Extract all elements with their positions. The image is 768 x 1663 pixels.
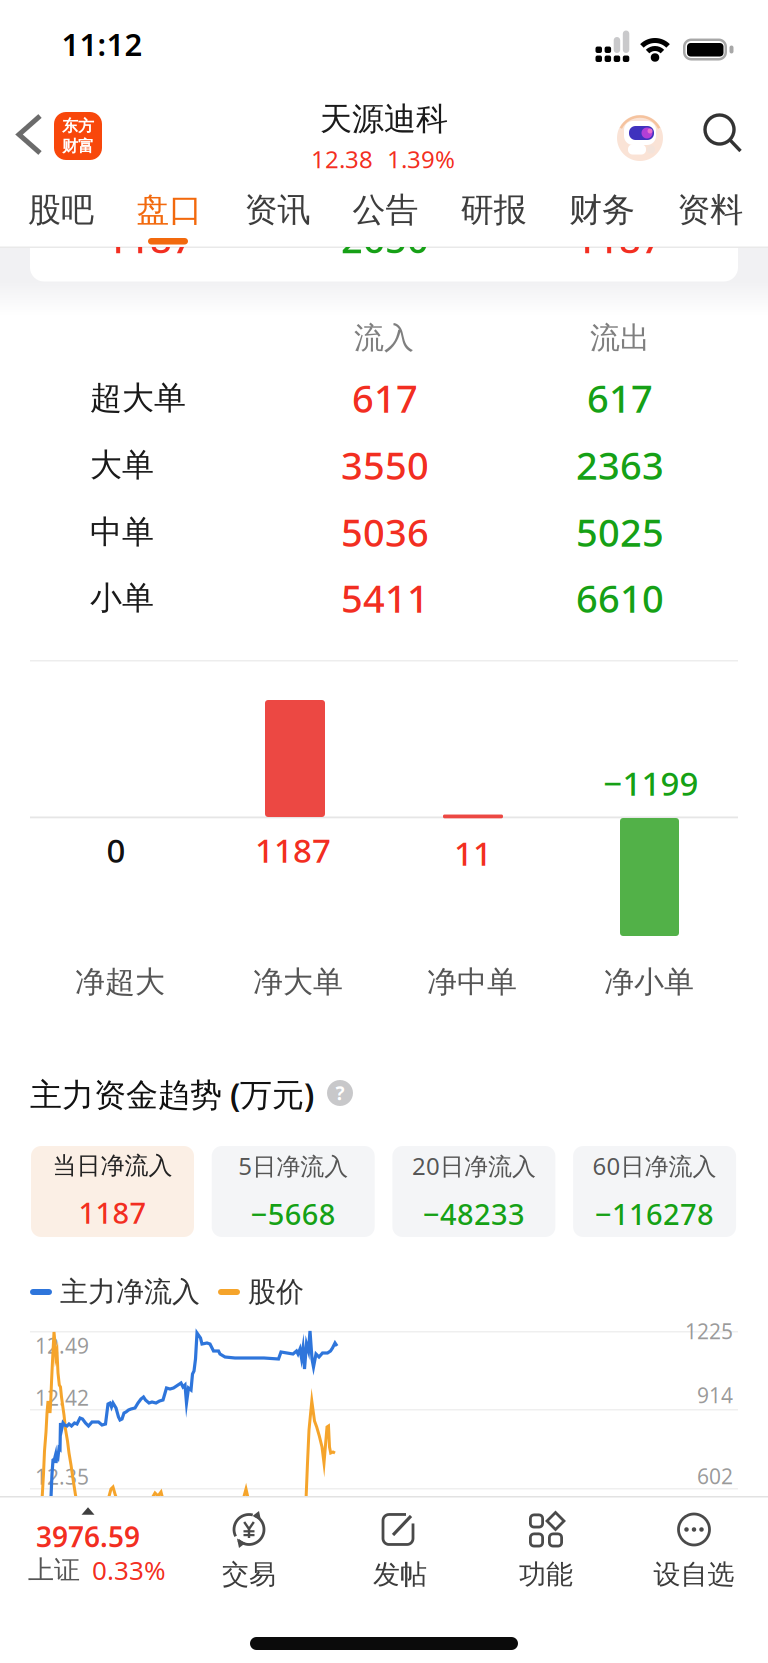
staticText: 主力资金趋势 (万元) <box>30 1072 314 1116</box>
staticText: 12.49 <box>35 1331 89 1360</box>
staticText: 研报 <box>461 189 527 231</box>
button[interactable]: 东方财富 <box>54 112 102 160</box>
staticText: 617 <box>587 372 653 424</box>
staticText: 资料 <box>677 189 743 231</box>
staticText: 6610 <box>576 572 664 624</box>
staticText: 5日净流入 <box>238 1149 348 1182</box>
button[interactable]: 功能 <box>478 1506 613 1596</box>
staticText: 上证 <box>28 1554 80 1586</box>
button[interactable]: 财务 <box>550 181 654 239</box>
staticText: 5025 <box>576 506 664 558</box>
staticText: 交易 <box>222 1557 276 1591</box>
staticText: 净中单 <box>427 963 517 1001</box>
staticText: 0 <box>106 827 125 872</box>
staticText: 11:12 <box>61 23 142 65</box>
button[interactable]: 帮助 <box>327 1080 353 1106</box>
staticText: 财富 <box>62 136 94 156</box>
staticText: 小单 <box>90 578 154 618</box>
staticText: 2650 <box>341 213 429 264</box>
staticText: 中单 <box>90 512 154 552</box>
staticText: 3976.59 <box>36 1517 140 1555</box>
staticText: 3550 <box>341 439 429 491</box>
staticText: 1225 <box>685 1317 733 1345</box>
button[interactable]: 5日净流入 <box>212 1146 375 1237</box>
staticText: 东方 <box>62 116 94 136</box>
staticText: −1199 <box>603 760 698 805</box>
staticText: 超大单 <box>90 378 186 418</box>
button[interactable]: 交易 <box>181 1506 316 1596</box>
staticText: 1187 <box>78 1193 146 1232</box>
staticText: 1187 <box>255 827 331 872</box>
staticText: 12.38 <box>311 143 373 175</box>
staticText: 天源迪科 <box>320 99 448 139</box>
button[interactable]: 资讯 <box>225 181 329 239</box>
staticText: 5036 <box>341 506 429 558</box>
staticText: 20日净流入 <box>412 1149 536 1182</box>
button[interactable]: 公告 <box>334 181 438 239</box>
staticText: 发帖 <box>373 1557 427 1591</box>
staticText: 公告 <box>353 189 419 231</box>
staticText: 11 <box>454 830 492 875</box>
staticText: 1187 <box>106 213 194 264</box>
staticText: −48233 <box>423 1194 525 1234</box>
staticText: 主力净流入 <box>60 1274 200 1310</box>
staticText: 大单 <box>90 445 154 485</box>
staticText: 60日净流入 <box>593 1149 717 1182</box>
staticText: 净大单 <box>253 963 343 1001</box>
staticText: −116278 <box>595 1194 714 1234</box>
button[interactable]: 盘口 <box>117 181 221 239</box>
button[interactable]: 3976.59 <box>0 1494 190 1590</box>
staticText: 12.35 <box>35 1462 89 1491</box>
staticText: 12.42 <box>35 1383 89 1412</box>
staticText: 2363 <box>576 439 664 491</box>
staticText: 股价 <box>248 1274 304 1310</box>
staticText: 1187 <box>575 213 663 264</box>
staticText: 5411 <box>341 572 429 624</box>
staticText: 1.39% <box>387 143 455 175</box>
button[interactable]: 资料 <box>658 181 762 239</box>
staticText: −5668 <box>251 1194 336 1234</box>
button[interactable]: 设自选 <box>626 1506 761 1596</box>
staticText: 602 <box>697 1462 733 1490</box>
staticText: ? <box>335 1080 344 1106</box>
button[interactable]: 发帖 <box>332 1506 467 1596</box>
staticText: 股吧 <box>28 189 94 231</box>
staticText: 当日净流入 <box>52 1151 172 1181</box>
staticText: 财务 <box>569 189 635 231</box>
staticText: 617 <box>352 372 418 424</box>
staticText: 净小单 <box>604 963 694 1001</box>
staticText: 资讯 <box>244 189 310 231</box>
button[interactable]: 60日净流入 <box>573 1146 736 1237</box>
button[interactable]: Search <box>703 114 745 154</box>
button[interactable]: Back <box>14 113 44 157</box>
button[interactable]: 当日净流入 <box>31 1146 194 1237</box>
staticText: 功能 <box>519 1557 573 1591</box>
staticText: 净超大 <box>75 963 165 1001</box>
staticText: 盘口 <box>136 189 202 231</box>
button[interactable]: AI 助手 <box>617 115 663 161</box>
button[interactable]: 20日净流入 <box>392 1146 555 1237</box>
staticText: 流入 <box>354 319 414 357</box>
staticText: 设自选 <box>653 1557 734 1591</box>
button[interactable]: 股吧 <box>9 181 113 239</box>
staticText: 流出 <box>590 319 650 357</box>
staticText: 914 <box>697 1381 733 1409</box>
staticText: 0.33% <box>92 1552 166 1588</box>
button[interactable]: 研报 <box>442 181 546 239</box>
